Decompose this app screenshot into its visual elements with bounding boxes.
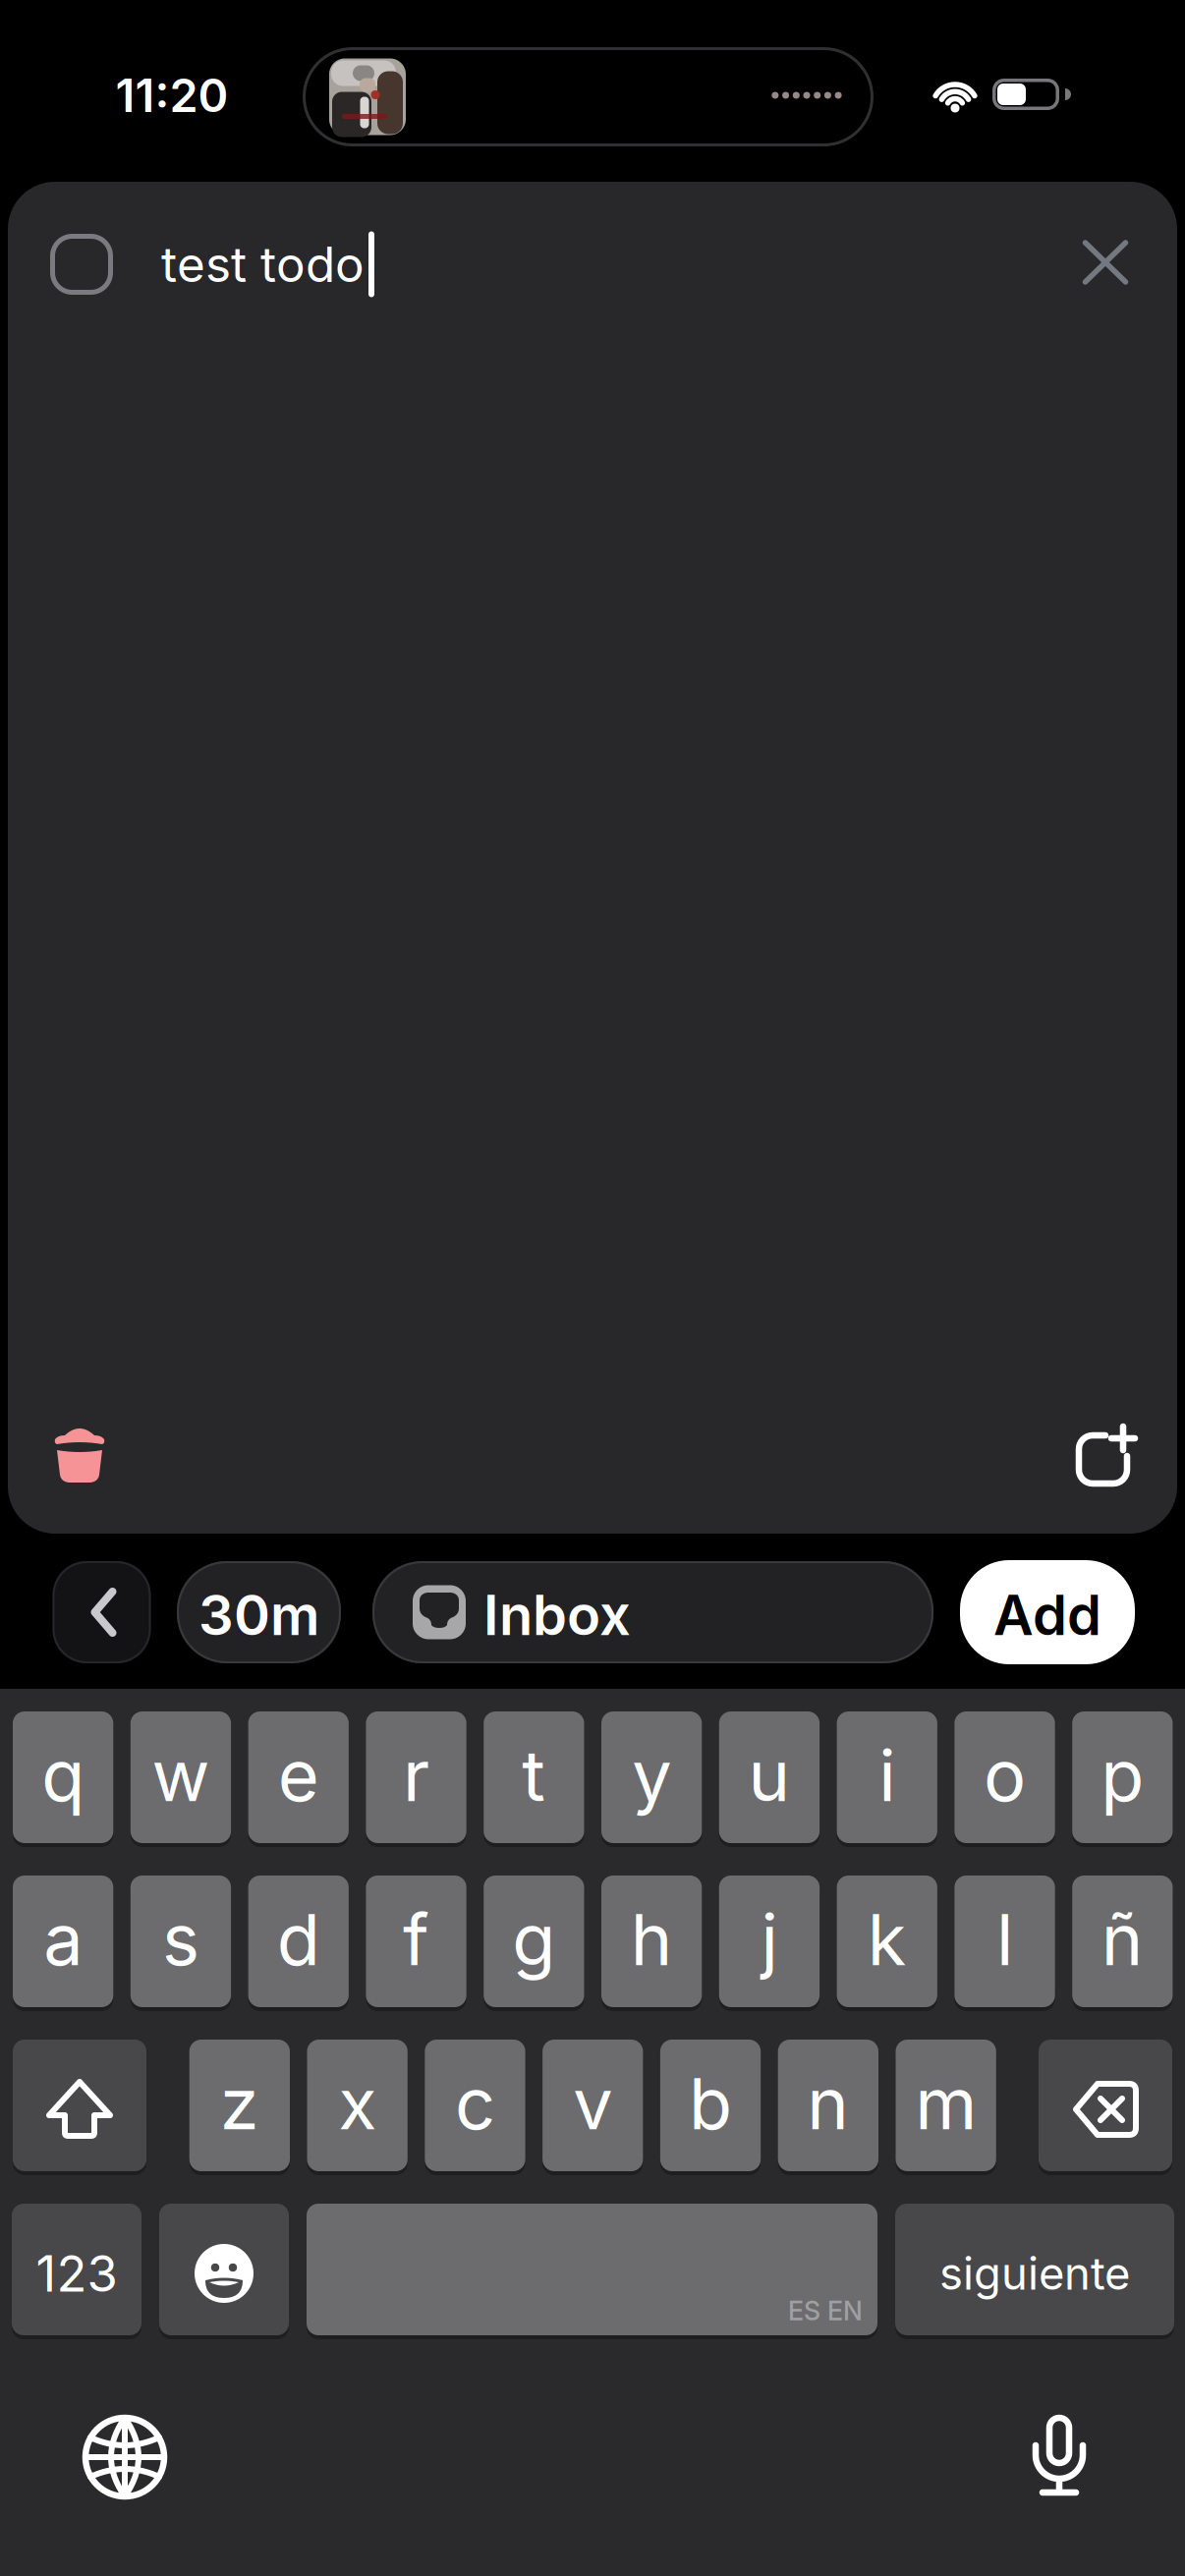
staticText: v <box>573 2062 612 2145</box>
button[interactable]: f <box>366 1876 466 2007</box>
button[interactable]: m <box>896 2040 996 2171</box>
button[interactable]: n <box>778 2040 878 2171</box>
staticText: ES EN <box>788 2295 863 2326</box>
staticText: x <box>338 2062 376 2145</box>
button[interactable]: Space <box>307 2204 877 2335</box>
button[interactable]: j <box>719 1876 820 2007</box>
button[interactable]: v <box>542 2040 643 2171</box>
button[interactable]: t <box>484 1711 584 1843</box>
staticText: i <box>879 1734 895 1817</box>
staticText: q <box>41 1734 85 1817</box>
staticText: k <box>867 1898 907 1981</box>
staticText: u <box>748 1734 790 1817</box>
button[interactable]: u <box>719 1711 820 1843</box>
staticText: z <box>220 2062 259 2145</box>
button[interactable]: s <box>130 1876 231 2007</box>
button[interactable]: a <box>13 1876 113 2007</box>
button[interactable]: o <box>954 1711 1055 1843</box>
button[interactable]: g <box>484 1876 584 2007</box>
staticText: d <box>277 1898 320 1981</box>
button[interactable]: Delete <box>50 1427 109 1485</box>
button[interactable]: Next keyboard <box>78 2410 172 2504</box>
button[interactable]: 30m <box>177 1561 341 1663</box>
button[interactable]: d <box>248 1876 349 2007</box>
staticText: f <box>403 1898 429 1981</box>
staticText: e <box>278 1734 319 1817</box>
button[interactable]: z <box>189 2040 290 2171</box>
button[interactable]: Emoji <box>159 2204 289 2335</box>
button[interactable]: l <box>954 1876 1055 2007</box>
staticText: r <box>403 1734 429 1817</box>
staticText: j <box>761 1898 778 1981</box>
button[interactable]: i <box>837 1711 937 1843</box>
staticText: test todo <box>161 236 365 293</box>
button[interactable]: Repeat <box>1072 1425 1135 1487</box>
staticText: ñ <box>1101 1898 1144 1981</box>
staticText: t <box>522 1734 546 1817</box>
staticText: p <box>1101 1734 1144 1817</box>
button[interactable]: b <box>660 2040 761 2171</box>
staticText: 123 <box>36 2244 117 2303</box>
button[interactable]: w <box>130 1711 231 1843</box>
button[interactable]: Inbox <box>372 1561 933 1663</box>
button[interactable]: x <box>307 2040 408 2171</box>
staticText: 11:20 <box>115 68 228 122</box>
staticText: Inbox <box>483 1583 631 1648</box>
button[interactable]: e <box>248 1711 349 1843</box>
button[interactable]: ñ <box>1072 1876 1173 2007</box>
button[interactable]: Dictate <box>1012 2407 1106 2501</box>
staticText: h <box>630 1898 673 1981</box>
staticText: m <box>915 2062 977 2145</box>
button[interactable]: Add <box>960 1560 1135 1664</box>
button[interactable]: r <box>366 1711 466 1843</box>
staticText: n <box>807 2062 849 2145</box>
staticText: w <box>152 1734 210 1817</box>
staticText: c <box>455 2062 495 2145</box>
button[interactable]: c <box>425 2040 525 2171</box>
button[interactable]: 123 <box>12 2204 141 2335</box>
staticText: a <box>43 1898 83 1981</box>
button[interactable]: Delete <box>1039 2040 1172 2171</box>
staticText: y <box>632 1734 671 1817</box>
staticText: l <box>996 1898 1013 1981</box>
staticText: o <box>984 1734 1026 1817</box>
button[interactable]: k <box>837 1876 937 2007</box>
staticText: Add <box>993 1583 1101 1648</box>
button[interactable]: Back <box>53 1561 151 1663</box>
button[interactable]: q <box>13 1711 113 1843</box>
button[interactable]: h <box>601 1876 702 2007</box>
staticText: 30m <box>198 1583 319 1648</box>
staticText: b <box>689 2062 732 2145</box>
staticText: s <box>162 1898 199 1981</box>
button[interactable]: Shift <box>13 2040 146 2171</box>
button[interactable]: Complete <box>50 234 113 295</box>
staticText: siguiente <box>939 2247 1130 2300</box>
button[interactable]: siguiente <box>895 2204 1174 2335</box>
button[interactable]: p <box>1072 1711 1173 1843</box>
staticText: g <box>512 1898 556 1981</box>
button[interactable]: Close <box>1075 233 1134 292</box>
button[interactable]: y <box>601 1711 702 1843</box>
